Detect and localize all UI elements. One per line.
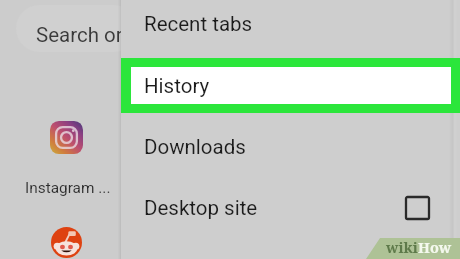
staticText: Instagram ...: [25, 179, 111, 197]
button[interactable]: Reddit: [51, 227, 82, 258]
staticText: Desktop site: [144, 196, 258, 220]
button[interactable]: Recent tabs: [121, 0, 460, 51]
button[interactable]: Search: [16, 5, 137, 52]
staticText: Downloads: [144, 135, 246, 159]
staticText: History: [144, 74, 210, 98]
staticText: Recent tabs: [144, 12, 253, 36]
button[interactable]: History: [131, 67, 451, 104]
staticText: How: [418, 237, 452, 257]
button[interactable]: Downloads: [121, 120, 460, 174]
button[interactable]: Desktop site: [121, 181, 460, 235]
staticText: wiki: [386, 237, 418, 257]
staticText: Search or: [36, 23, 123, 47]
other: Desktop site checkbox: [406, 197, 429, 219]
button[interactable]: Instagram: [50, 121, 83, 154]
